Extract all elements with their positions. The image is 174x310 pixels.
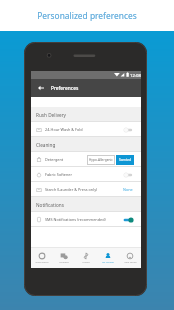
staticText: None: [123, 187, 133, 192]
staticText: Detergent: [45, 157, 64, 162]
staticText: Order Status: [35, 261, 49, 264]
staticText: Preferences: [51, 85, 79, 92]
staticText: Cleaning: [36, 142, 56, 148]
button[interactable]: Starch (Launder & Press only): [31, 182, 141, 197]
button[interactable]: Hypo-Allergenic: [87, 155, 115, 165]
button[interactable]: Detergent: [31, 152, 141, 167]
staticText: Schedule: [59, 261, 69, 264]
staticText: Rush Delivery: [36, 112, 67, 118]
button[interactable]: Pricing: [75, 248, 97, 268]
staticText: My Account: [102, 261, 114, 264]
staticText: Pricing: [82, 261, 90, 264]
button[interactable]: 24-Hour Wash & Fold: [31, 122, 141, 137]
button[interactable]: Back: [33, 79, 49, 97]
staticText: 24-Hour Wash & Fold: [45, 127, 83, 132]
button[interactable]: Order Status: [31, 248, 53, 268]
staticText: Personalized preferences: [37, 10, 137, 21]
button[interactable]: Help Center: [119, 248, 141, 268]
button[interactable]: Switch on: [123, 216, 134, 224]
staticText: Starch (Launder & Press only): [45, 187, 98, 192]
staticText: Notifications: [36, 202, 64, 208]
button[interactable]: Schedule: [53, 248, 75, 268]
staticText: Hypo-Allergenic: [89, 158, 113, 162]
button[interactable]: Switch off: [123, 126, 134, 134]
staticText: Help Center: [124, 261, 137, 264]
button[interactable]: None: [123, 187, 133, 192]
staticText: Scented: [119, 158, 131, 162]
staticText: 12:08: [130, 72, 141, 78]
button[interactable]: SMS Notifications (recommended): [31, 212, 141, 227]
staticText: SMS Notifications (recommended): [45, 217, 106, 222]
button[interactable]: Scented: [116, 155, 134, 165]
button[interactable]: My Account: [97, 248, 119, 268]
button[interactable]: Switch off: [123, 171, 134, 179]
button[interactable]: Fabric Softener: [31, 167, 141, 182]
staticText: Fabric Softener: [45, 172, 73, 177]
